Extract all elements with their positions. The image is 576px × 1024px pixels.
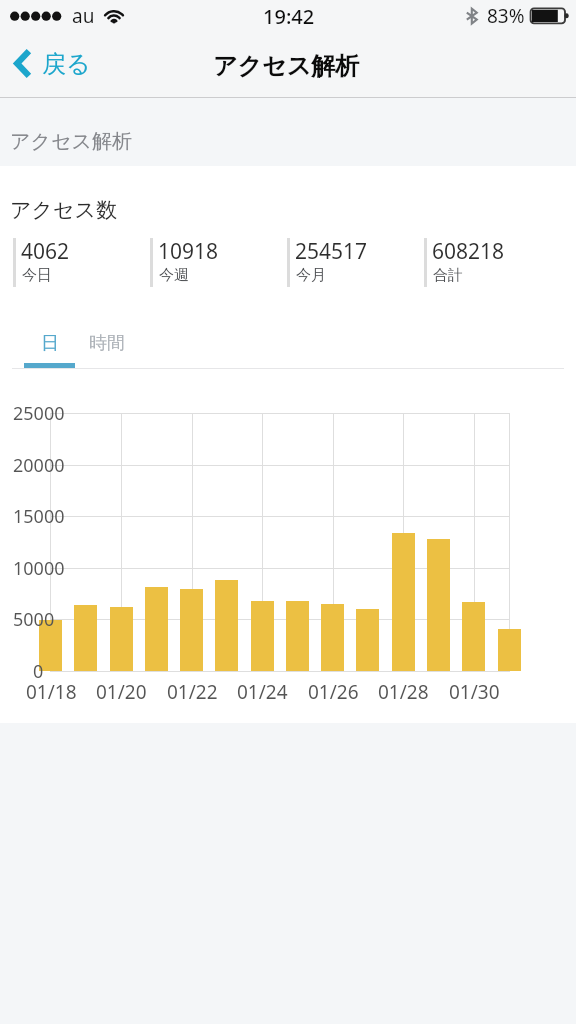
- staticText: 01/18: [26, 679, 77, 705]
- staticText: 83%: [487, 3, 525, 29]
- button[interactable]: 戻る (Back): [6, 43, 98, 95]
- button[interactable]: 10918: [150, 238, 287, 287]
- staticText: 合計: [433, 266, 463, 285]
- staticText: 今月: [296, 266, 326, 285]
- staticText: 戻る: [42, 49, 91, 79]
- staticText: 今週: [159, 266, 189, 285]
- staticText: 日: [41, 332, 59, 355]
- staticText: 01/26: [308, 679, 359, 705]
- staticText: 今日: [22, 266, 52, 285]
- staticText: 0: [33, 659, 44, 684]
- staticText: 01/30: [449, 679, 500, 705]
- staticText: 01/20: [96, 679, 147, 705]
- staticText: 608218: [432, 237, 505, 266]
- staticText: 15000: [13, 504, 65, 529]
- staticText: アクセス解析: [10, 129, 132, 154]
- staticText: 時間: [89, 332, 125, 355]
- button[interactable]: 時間: [83, 325, 131, 373]
- staticText: 20000: [13, 453, 65, 478]
- button[interactable]: 日: [24, 325, 75, 373]
- staticText: アクセス解析: [213, 51, 360, 81]
- staticText: 10918: [158, 237, 219, 266]
- button[interactable]: 4062: [13, 238, 150, 287]
- staticText: 01/28: [378, 679, 429, 705]
- staticText: 25000: [13, 401, 65, 426]
- button[interactable]: 608218: [424, 238, 561, 287]
- staticText: 01/22: [167, 679, 218, 705]
- staticText: au: [72, 3, 95, 29]
- staticText: 01/24: [237, 679, 288, 705]
- staticText: 10000: [13, 556, 65, 581]
- staticText: 19:42: [263, 3, 315, 30]
- button[interactable]: 254517: [287, 238, 424, 287]
- staticText: 254517: [295, 237, 368, 266]
- staticText: アクセス数: [10, 197, 117, 223]
- staticText: 5000: [13, 607, 55, 632]
- staticText: 4062: [21, 237, 70, 266]
